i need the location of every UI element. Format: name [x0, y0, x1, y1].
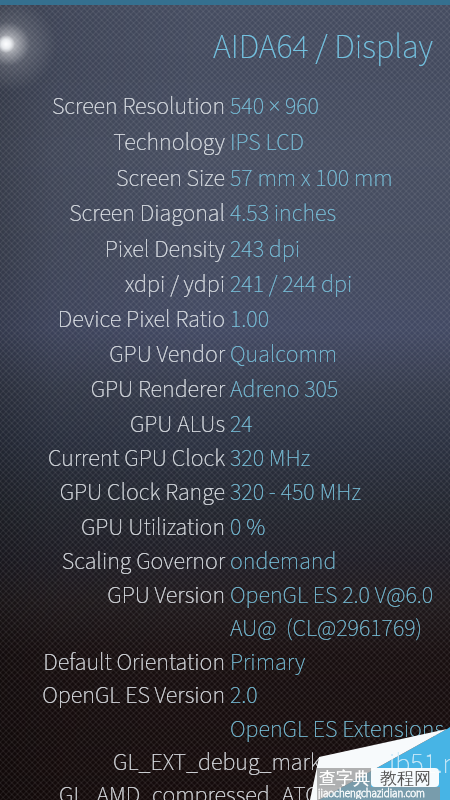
staticText: OpenGL ES 2.0 V@6.0 [230, 578, 434, 612]
staticText: GPU ALUs [129, 407, 225, 441]
staticText: GPU Utilization [80, 510, 225, 544]
staticText: 1.00 [230, 302, 269, 336]
staticText: Screen Size [115, 161, 225, 195]
staticText: Current GPU Clock [47, 441, 225, 475]
staticText: 57 mm x 100 mm [230, 161, 393, 195]
staticText: Device Pixel Ratio [57, 302, 225, 336]
staticText: AIDA64 / Display [0, 23, 433, 71]
staticText: 24 [230, 407, 253, 441]
staticText: 2.0 [230, 678, 258, 712]
staticText: 243 dpi [230, 232, 301, 266]
staticText: ondemand [230, 544, 337, 578]
staticText: 查字典 [319, 768, 370, 787]
staticText: Screen Resolution [51, 89, 225, 123]
staticText: Technology [113, 125, 225, 159]
staticText: OpenGL ES Extensions [230, 712, 444, 746]
staticText: 241 / 244 dpi [230, 267, 353, 301]
staticText: GPU Clock Range [59, 475, 225, 509]
staticText: Default Orientation [43, 645, 225, 679]
staticText: jb51.net [389, 744, 450, 784]
staticText: Primary [230, 645, 306, 679]
staticText: 320 MHz [230, 441, 311, 475]
staticText: GPU Renderer [90, 372, 225, 406]
staticText: Screen Diagonal [69, 196, 225, 230]
staticText: 4.53 inches [230, 196, 337, 230]
staticText: jiaochengchazidian.com [318, 786, 425, 799]
staticText: OpenGL ES Version [42, 678, 225, 712]
staticText: Pixel Density [104, 232, 225, 266]
staticText: Scaling Governor [61, 544, 225, 578]
staticText: 教程网 [380, 768, 431, 787]
staticText: IPS LCD [230, 125, 305, 159]
staticText: GL_EXT_debug_marker [113, 745, 340, 779]
staticText: GPU Vendor [109, 337, 225, 371]
staticText: 0 % [230, 510, 266, 544]
staticText: Qualcomm [230, 337, 338, 371]
staticText: xdpi / ydpi [124, 267, 225, 301]
staticText: GL_AMD_compressed_ATC_texture [59, 778, 397, 800]
staticText: GPU Version [107, 578, 225, 612]
staticText: AU@ (CL@2961769) [230, 611, 423, 645]
staticText: 320 - 450 MHz [230, 475, 361, 509]
staticText: Adreno 305 [230, 372, 339, 406]
staticText: 540 × 960 [230, 89, 319, 123]
